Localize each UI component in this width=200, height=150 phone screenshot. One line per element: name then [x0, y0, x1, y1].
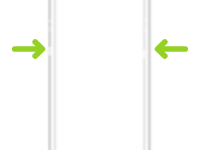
button[interactable]: Press and hold the side buttons	[0, 0, 200, 150]
